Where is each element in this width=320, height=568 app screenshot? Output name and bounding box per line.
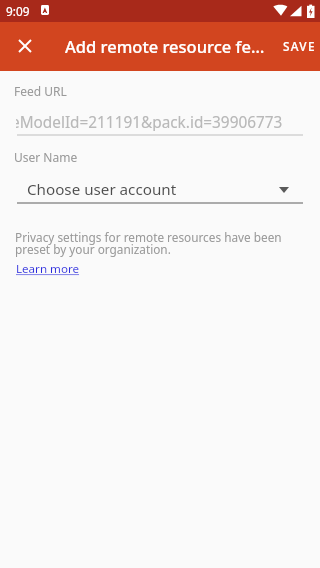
- button[interactable]: Learn more: [16, 261, 80, 277]
- button[interactable]: Choose user account: [17, 172, 303, 204]
- button[interactable]: SAVE: [273, 22, 320, 71]
- staticText: Feed URL: [14, 83, 67, 99]
- staticText: Choose user account: [27, 179, 177, 200]
- button[interactable]: Close: [0, 22, 49, 71]
- button[interactable]: eModelId=211191&pack.id=39906773: [16, 111, 304, 131]
- staticText: Add remote resource fe…: [65, 35, 265, 57]
- staticText: Learn more: [16, 261, 80, 277]
- staticText: eModelId=211191&pack.id=39906773: [16, 112, 283, 131]
- staticText: User Name: [14, 149, 78, 165]
- staticText: Privacy settings for remote resources ha…: [15, 229, 282, 258]
- staticText: SAVE: [283, 38, 316, 54]
- staticText: 9:09: [6, 3, 30, 19]
